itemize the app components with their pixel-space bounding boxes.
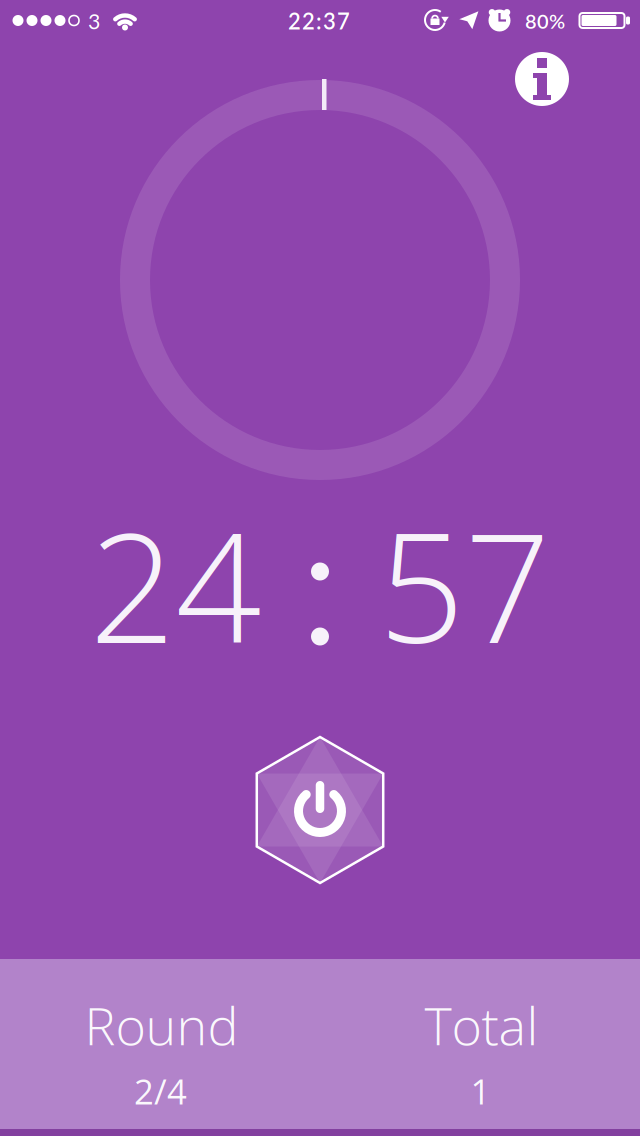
staticText: 1 xyxy=(470,1067,490,1115)
staticText: 3 xyxy=(88,8,100,34)
staticText: 22:37 xyxy=(288,8,350,34)
button[interactable]: Start or stop timer xyxy=(255,735,385,885)
staticText: 80% xyxy=(525,9,565,33)
staticText: Total xyxy=(424,990,538,1060)
button[interactable]: Info xyxy=(515,52,569,106)
staticText: 2/4 xyxy=(134,1067,187,1115)
staticText: Round xyxy=(84,990,238,1060)
staticText: 24 57 xyxy=(89,482,550,687)
